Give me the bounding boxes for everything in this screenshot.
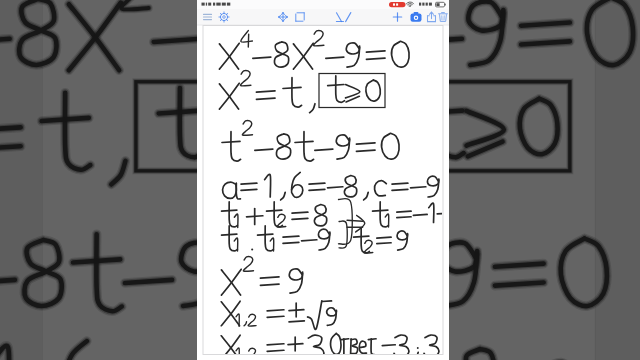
button[interactable]: Crop [292, 9, 308, 25]
button[interactable]: Pen tools [336, 9, 352, 25]
button[interactable]: Settings [216, 9, 232, 25]
button[interactable]: Camera [408, 9, 424, 25]
button[interactable]: Move [275, 9, 291, 25]
button[interactable]: Share [424, 9, 440, 25]
button[interactable]: Add [390, 9, 406, 25]
button[interactable]: Menu [200, 9, 216, 25]
button[interactable]: Delete [435, 9, 451, 25]
